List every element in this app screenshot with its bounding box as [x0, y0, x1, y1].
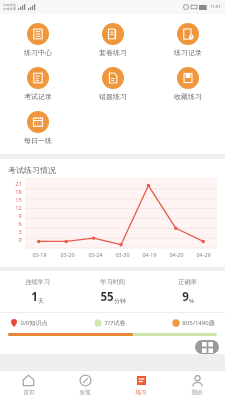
staticText: 805/1490题 — [182, 319, 215, 327]
staticText: 11:01 — [210, 4, 221, 10]
button[interactable]: 7/7试卷 — [94, 319, 126, 327]
button[interactable]: 考试记录 — [20, 66, 56, 102]
staticText: 9 — [182, 289, 189, 305]
staticText: 03-30 — [115, 251, 130, 258]
staticText: 21 — [15, 180, 22, 188]
staticText: 错题练习 — [99, 92, 127, 101]
staticText: 1 — [31, 289, 38, 305]
staticText: 考试练习情况 — [8, 165, 56, 175]
staticText: 中国移动 — [3, 3, 16, 7]
staticText: 12 — [15, 204, 22, 212]
staticText: 15 — [15, 196, 22, 204]
staticText: 分钟 — [114, 297, 126, 305]
staticText: 03-20 — [60, 251, 75, 258]
staticText: 6 — [18, 220, 22, 228]
staticText: 我的 — [191, 389, 203, 396]
staticText: 3 — [18, 228, 22, 236]
button[interactable]: 我的 — [169, 370, 225, 400]
staticText: 学习时间 — [100, 278, 125, 286]
button[interactable]: Apps — [195, 340, 219, 354]
button[interactable]: 805/1490题 — [172, 319, 215, 327]
staticText: 7/7试卷 — [104, 319, 126, 327]
button[interactable]: 错题练习 — [95, 66, 131, 102]
staticText: 练习中心 — [24, 48, 52, 57]
staticText: 套卷练习 — [99, 48, 127, 57]
staticText: 0/0知识点 — [20, 319, 48, 327]
staticText: 收藏练习 — [174, 92, 202, 101]
staticText: 03-19 — [32, 251, 47, 258]
button[interactable]: 练习中心 — [20, 22, 56, 58]
staticText: 9 — [18, 212, 22, 220]
button[interactable]: 练习 — [113, 370, 169, 400]
staticText: 天 — [38, 297, 44, 305]
button[interactable]: 首页 — [0, 370, 57, 400]
staticText: 发现 — [79, 389, 91, 396]
staticText: 练习 — [135, 389, 147, 396]
staticText: 连续学习 — [25, 278, 50, 286]
staticText: 每日一练 — [24, 136, 52, 145]
staticText: % — [189, 297, 194, 305]
staticText: 考试记录 — [24, 92, 52, 101]
staticText: 18 — [15, 188, 22, 196]
staticText: 04-20 — [169, 251, 184, 258]
staticText: 0 — [18, 236, 22, 244]
staticText: 首页 — [23, 389, 35, 396]
button[interactable]: 学习时间 — [75, 278, 150, 305]
staticText: 练习记录 — [174, 48, 202, 57]
button[interactable]: 收藏练习 — [170, 66, 206, 102]
staticText: 03-24 — [88, 251, 103, 258]
staticText: 55 — [100, 289, 114, 305]
button[interactable]: 套卷练习 — [95, 22, 131, 58]
button[interactable]: 练习记录 — [170, 22, 206, 58]
button[interactable]: 每日一练 — [20, 110, 56, 146]
staticText: 04-29 — [196, 251, 211, 258]
button[interactable]: 正确率 — [150, 278, 225, 305]
staticText: 正确率 — [178, 278, 197, 286]
button[interactable]: 发现 — [57, 370, 113, 400]
button[interactable]: 连续学习 — [0, 278, 75, 305]
staticText: 中国联通 — [3, 7, 16, 11]
button[interactable]: 0/0知识点 — [10, 319, 48, 327]
staticText: 04-19 — [142, 251, 157, 258]
